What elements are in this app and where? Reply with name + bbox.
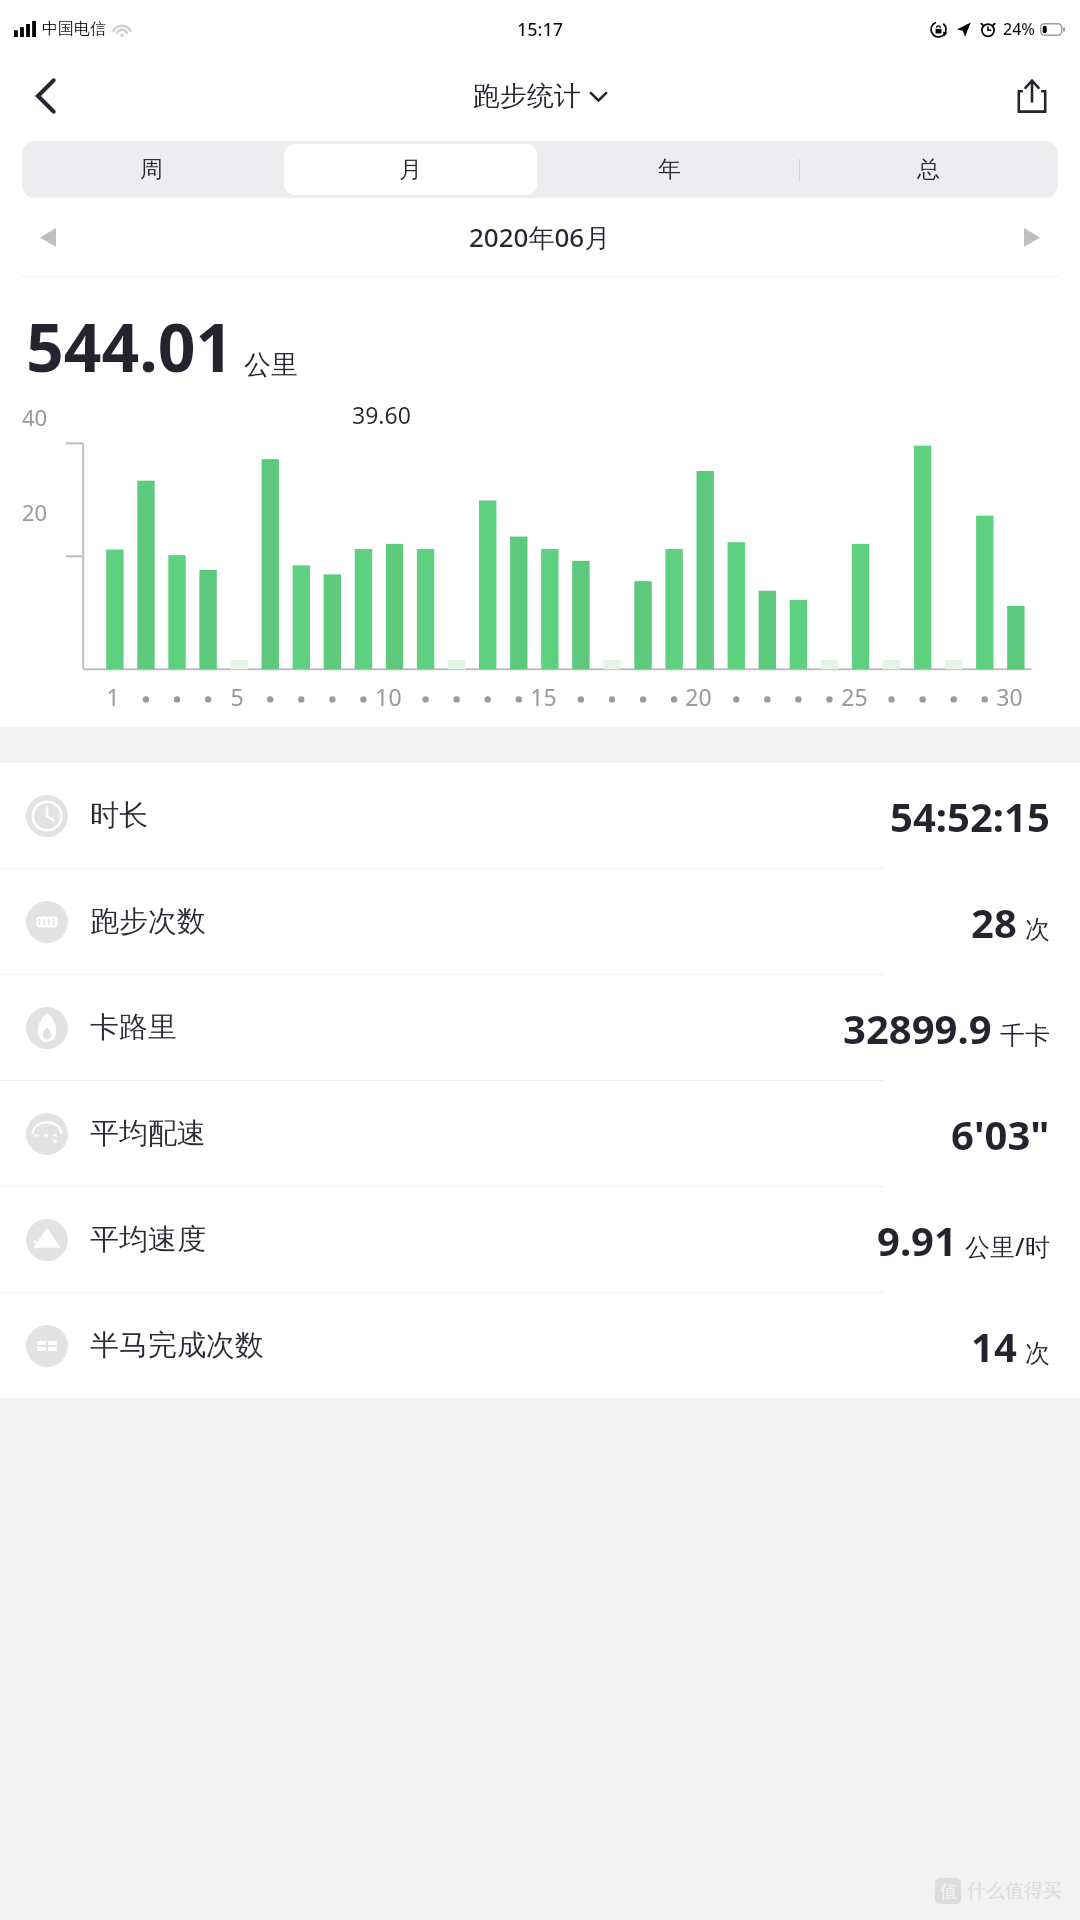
staticText: 平均速度: [90, 1221, 206, 1258]
staticText: 20: [685, 681, 712, 712]
staticText: 月: [399, 155, 422, 184]
staticText: 5: [230, 681, 244, 712]
staticText: 54:52:15: [890, 789, 1050, 843]
button[interactable]: 跑步次数: [0, 869, 1080, 974]
button[interactable]: Back: [18, 68, 74, 124]
staticText: 39.60: [352, 399, 411, 430]
staticText: 千卡: [1000, 1020, 1050, 1051]
button[interactable]: 时长: [0, 763, 1080, 868]
staticText: 15: [530, 681, 557, 712]
staticText: 6'03": [951, 1107, 1050, 1161]
staticText: 40: [22, 402, 48, 432]
button[interactable]: 平均配速: [0, 1081, 1080, 1186]
staticText: 次: [1025, 1338, 1050, 1369]
button[interactable]: 年: [543, 144, 796, 195]
button[interactable]: Previous month: [22, 211, 74, 263]
staticText: 公里/时: [965, 1229, 1050, 1263]
staticText: 9.91: [877, 1213, 957, 1267]
button[interactable]: 周: [25, 144, 278, 195]
staticText: 跑步次数: [90, 903, 206, 940]
button[interactable]: 卡路里: [0, 975, 1080, 1080]
button[interactable]: Next month: [1006, 211, 1058, 263]
staticText: 次: [1025, 914, 1050, 945]
staticText: 24%: [1003, 18, 1035, 40]
staticText: 卡路里: [90, 1009, 177, 1046]
staticText: 1: [106, 681, 120, 712]
staticText: 平均配速: [90, 1115, 206, 1152]
staticText: 32899.9: [843, 1001, 992, 1055]
button[interactable]: 跑步统计: [473, 79, 607, 113]
staticText: 30: [996, 681, 1023, 712]
staticText: 28: [971, 895, 1017, 949]
staticText: 总: [917, 155, 940, 184]
staticText: 什么值得买: [967, 1879, 1062, 1903]
staticText: 25: [841, 681, 868, 712]
staticText: 14: [971, 1319, 1017, 1373]
staticText: 544.01: [26, 301, 234, 391]
button[interactable]: 月: [284, 144, 537, 195]
staticText: 公里: [244, 348, 298, 382]
staticText: 中国电信: [42, 19, 106, 39]
button[interactable]: 总: [799, 141, 1058, 198]
staticText: 2020年06月: [469, 219, 611, 255]
staticText: 时长: [90, 797, 148, 834]
staticText: 周: [140, 155, 163, 184]
button[interactable]: 半马完成次数: [0, 1293, 1080, 1398]
staticText: 15:17: [517, 17, 564, 42]
staticText: 年: [658, 155, 681, 184]
staticText: 20: [22, 497, 48, 527]
button[interactable]: 平均速度: [0, 1187, 1080, 1292]
staticText: 半马完成次数: [90, 1327, 264, 1364]
staticText: 值: [940, 1881, 957, 1902]
staticText: 跑步统计: [473, 79, 581, 113]
staticText: 10: [375, 681, 402, 712]
button[interactable]: Share: [1004, 68, 1060, 124]
